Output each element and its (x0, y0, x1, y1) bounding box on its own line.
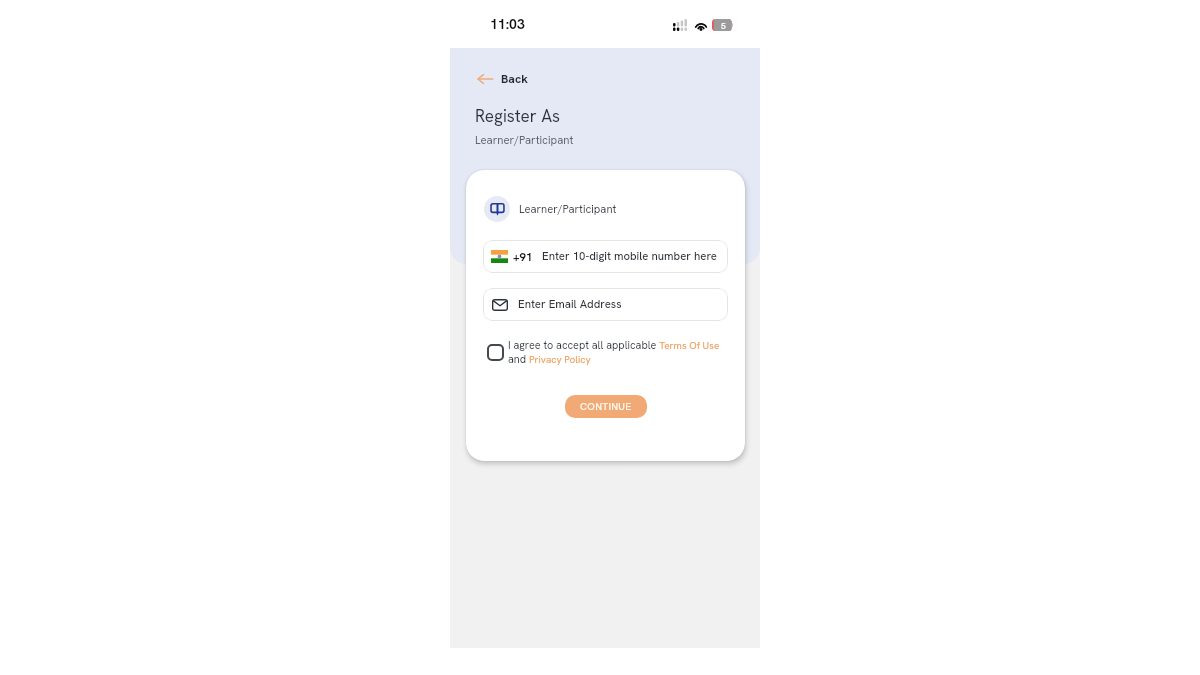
button[interactable]: +91 (483, 240, 728, 273)
staticText: CONTINUE (580, 400, 632, 413)
staticText: Learner/Participant (519, 202, 617, 217)
other: Wi-Fi (694, 19, 708, 31)
staticText: Enter Email Address (518, 297, 622, 312)
other: Battery 5 percent (712, 19, 733, 31)
staticText: 5 (721, 20, 726, 31)
staticText: Back (501, 71, 528, 87)
staticText: +91 (513, 249, 533, 264)
other: Signal strength (673, 19, 689, 31)
button[interactable]: I agree checkbox (487, 344, 504, 361)
button[interactable]: Enter Email Address (483, 288, 728, 321)
staticText: Enter 10-digit mobile number here (542, 249, 717, 264)
button[interactable]: CONTINUE (565, 395, 647, 418)
other: Back (477, 73, 493, 85)
staticText: Learner/Participant (475, 133, 574, 148)
staticText: Register As (475, 105, 561, 127)
staticText: 11:03 (490, 15, 525, 33)
button[interactable]: I agree to accept all applicable Terms O… (508, 338, 732, 366)
button[interactable]: Back (473, 67, 532, 91)
